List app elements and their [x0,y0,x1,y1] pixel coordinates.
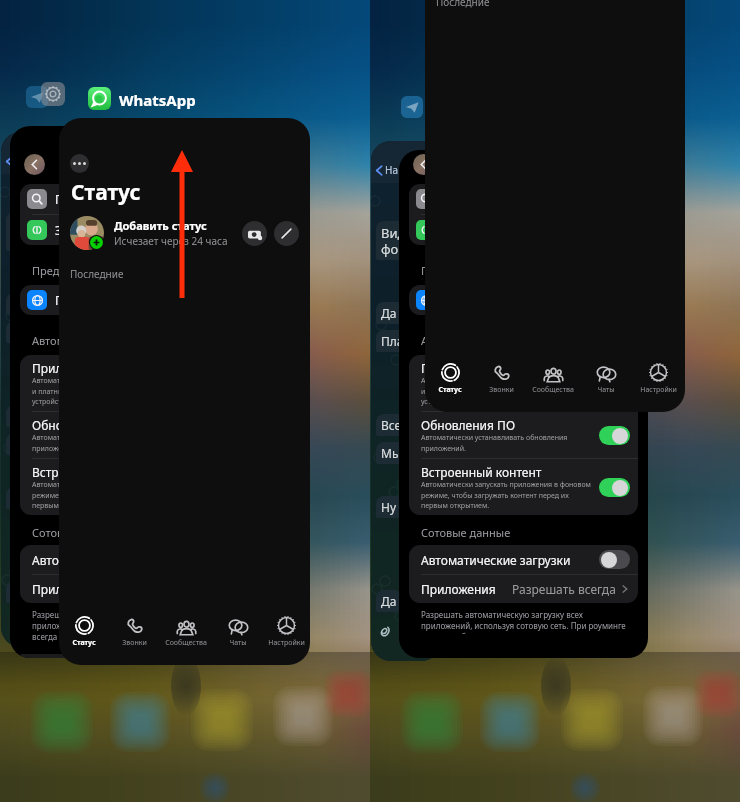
staticText: Приложения [32,360,107,376]
button[interactable]: Настройки [263,615,310,648]
button[interactable]: Звуки [416,220,630,240]
staticText: Чаты [597,385,615,395]
staticText: Предложения [421,263,496,278]
staticText: Звуки [55,222,234,238]
staticText: Приложения [421,360,496,376]
staticText: Автоматические загрузки [32,333,169,348]
staticText: Автоматически устанавливать новые беспла… [421,376,591,406]
staticText: Добавить статус [114,218,207,233]
button[interactable]: Встроенный контент [421,464,630,510]
staticText: Да [11,584,27,600]
button[interactable]: Back [24,154,45,175]
staticText: Все [381,417,402,433]
staticText: Встроенный контент [32,464,153,480]
staticText: Вид фон [381,224,407,257]
staticText: Статус [438,385,462,395]
staticText: Ну [11,490,30,506]
button[interactable]: Автоматические загрузки [32,550,242,569]
staticText: Автоматически устанавливать обновления п… [32,433,202,453]
button[interactable]: Обновления ПО [421,417,630,453]
staticText: Статус [72,638,96,648]
button[interactable]: Чаты [581,362,631,395]
staticText: WhatsApp [119,90,196,110]
staticText: Встроенный контент [421,464,542,480]
staticText: Мы [381,445,401,461]
staticText: Автоматически запускать приложения в фон… [421,480,591,510]
button[interactable]: Статус [59,615,109,648]
button[interactable]: Toggle [599,426,630,445]
staticText: Вид фон [11,215,37,248]
button[interactable]: Настройки [631,362,685,395]
button[interactable]: Статус [425,362,475,395]
staticText: Пла [381,333,404,349]
staticText: Да [381,305,400,321]
staticText: Чаты [229,638,247,648]
staticText: Поиск [55,191,234,207]
staticText: Приложения [421,581,512,597]
staticText: Сотовые данные [421,525,511,540]
button[interactable]: Toggle [599,478,630,497]
button[interactable]: Поиск [416,189,630,209]
button[interactable]: Звуки [27,220,242,240]
staticText: Ну [381,499,400,515]
staticText: Сотовые данные [32,525,122,540]
staticText: Последние [436,0,490,9]
button[interactable]: Встроенный контент [32,464,242,510]
staticText: Сообщества [532,385,574,395]
button[interactable]: Back [374,163,398,177]
button[interactable]: Сообщества [159,615,213,648]
staticText: Автоматические загрузки [421,333,558,348]
button[interactable]: Back [4,154,28,168]
button[interactable]: Персонализированные [416,290,630,310]
button[interactable]: Добавить статус [70,216,299,250]
button[interactable]: Toggle [599,374,630,393]
button[interactable]: More options [70,154,89,173]
button[interactable]: Звонки [109,615,159,648]
staticText: Обновления ПО [32,417,127,433]
button[interactable]: Toggle [599,550,630,569]
button[interactable]: Write status [274,221,299,246]
staticText: Все [11,408,32,424]
button[interactable]: Автоматические загрузки [421,550,630,569]
button[interactable]: Сообщества [526,362,580,395]
staticText: Да [381,593,397,609]
staticText: Последние [70,267,124,281]
button[interactable]: Приложения [421,360,630,406]
staticText: Мы [11,436,31,452]
staticText: Да [11,296,30,312]
button[interactable]: Приложения [32,360,242,406]
staticText: Исчезает через 24 часа [114,234,228,248]
staticText: Персонализированные [55,292,234,308]
staticText: Автоматические загрузки [421,552,599,568]
staticText: Настройки [640,385,677,395]
button[interactable]: Camera [242,221,267,246]
button[interactable]: Персонализированные [27,290,242,310]
button[interactable]: Приложения [421,581,629,597]
button[interactable]: Поиск [27,189,242,209]
button[interactable]: Приложения [32,581,241,597]
staticText: Предложения [32,263,107,278]
staticText: На [385,163,398,177]
staticText: Разрешать всегда [512,581,616,597]
button[interactable]: Back [413,154,434,175]
staticText: Статус [71,178,141,207]
button[interactable]: Звонки [476,362,526,395]
staticText: Разрешать автоматическую загрузку всех п… [421,609,632,634]
staticText: Автоматически устанавливать обновления п… [421,433,591,453]
staticText: Звонки [489,385,514,395]
staticText: Обновления ПО [421,417,516,433]
button[interactable]: Чаты [213,615,263,648]
staticText: Настройки [268,638,305,648]
staticText: Сообщества [165,638,207,648]
staticText: На [15,154,28,168]
button[interactable]: Обновления ПО [32,417,242,453]
